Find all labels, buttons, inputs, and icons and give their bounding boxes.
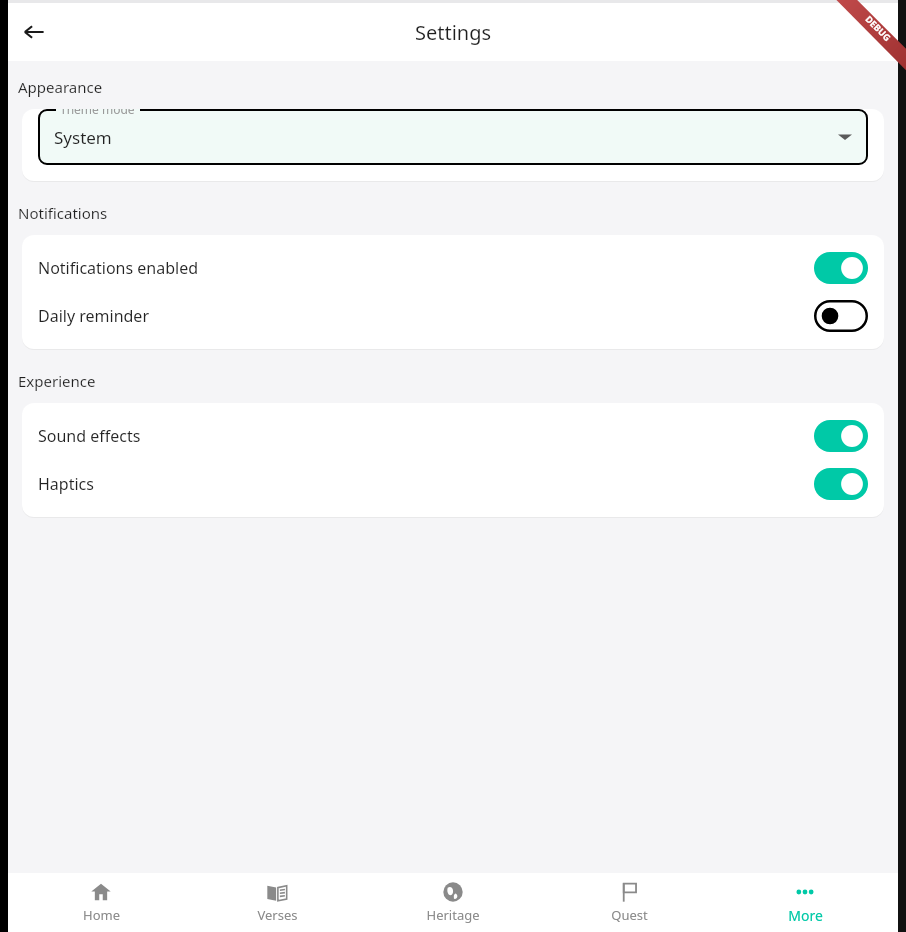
button[interactable]: Sound effects <box>22 412 884 460</box>
button[interactable]: Notifications enabled <box>22 244 884 292</box>
staticText: Settings <box>415 19 492 46</box>
staticText: Heritage <box>426 906 480 924</box>
staticText: Quest <box>611 906 648 924</box>
button[interactable]: Verses <box>202 873 352 932</box>
staticText: Home <box>83 906 120 924</box>
staticText: System <box>54 126 112 149</box>
button[interactable]: Daily reminder <box>22 292 884 340</box>
staticText: More <box>788 906 823 925</box>
button[interactable]: Haptics <box>22 460 884 508</box>
staticText: Verses <box>257 906 298 924</box>
staticText: Appearance <box>18 77 103 97</box>
button[interactable]: Theme mode <box>38 109 868 165</box>
button[interactable]: On <box>814 252 868 284</box>
staticText: Haptics <box>38 473 814 495</box>
button[interactable]: More <box>730 873 880 932</box>
button[interactable]: Home <box>26 873 176 932</box>
button[interactable]: On <box>814 420 868 452</box>
staticText: Theme mode <box>60 109 135 117</box>
button[interactable]: Off <box>814 300 868 332</box>
button[interactable]: Back <box>12 10 56 54</box>
button[interactable]: Heritage <box>378 873 528 932</box>
staticText: Daily reminder <box>38 305 814 327</box>
button[interactable]: On <box>814 468 868 500</box>
staticText: Notifications enabled <box>38 257 814 279</box>
staticText: Experience <box>18 371 96 391</box>
staticText: Sound effects <box>38 425 814 447</box>
staticText: DEBUG <box>863 13 894 43</box>
staticText: Notifications <box>18 203 108 223</box>
button[interactable]: Quest <box>554 873 704 932</box>
